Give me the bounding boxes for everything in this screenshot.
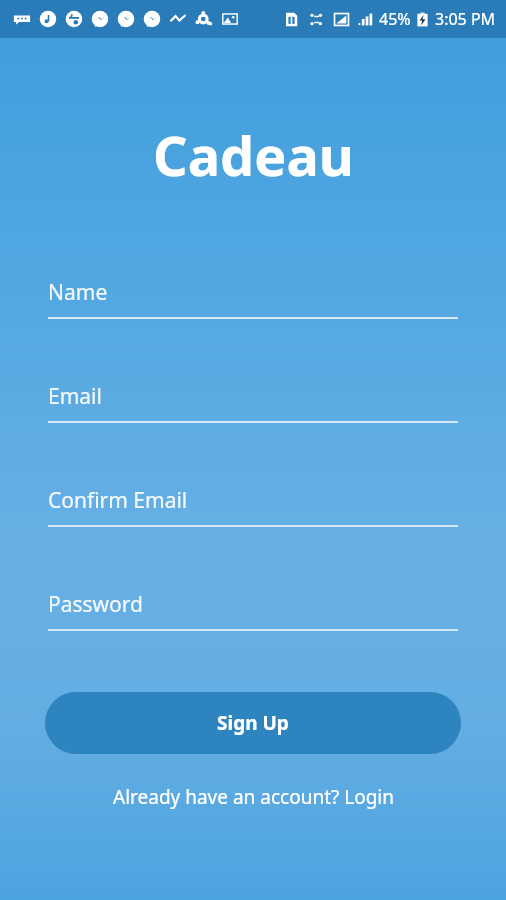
staticText: Password (48, 590, 143, 619)
staticText: Name (48, 278, 108, 307)
staticText: 45% (379, 8, 411, 30)
staticText: 3:05 PM (435, 8, 496, 30)
staticText: Cadeau (153, 118, 354, 192)
button[interactable]: Confirm Email (48, 486, 458, 527)
button[interactable]: Name (48, 278, 458, 319)
button[interactable]: Password (48, 590, 458, 631)
staticText: Sign Up (217, 710, 289, 736)
button[interactable]: Email (48, 382, 458, 423)
staticText: Confirm Email (48, 486, 188, 515)
button[interactable]: Sign Up (45, 692, 461, 754)
button[interactable]: Already have an account? Login (101, 778, 406, 816)
staticText: Already have an account? Login (113, 784, 394, 810)
staticText: Email (48, 382, 102, 411)
